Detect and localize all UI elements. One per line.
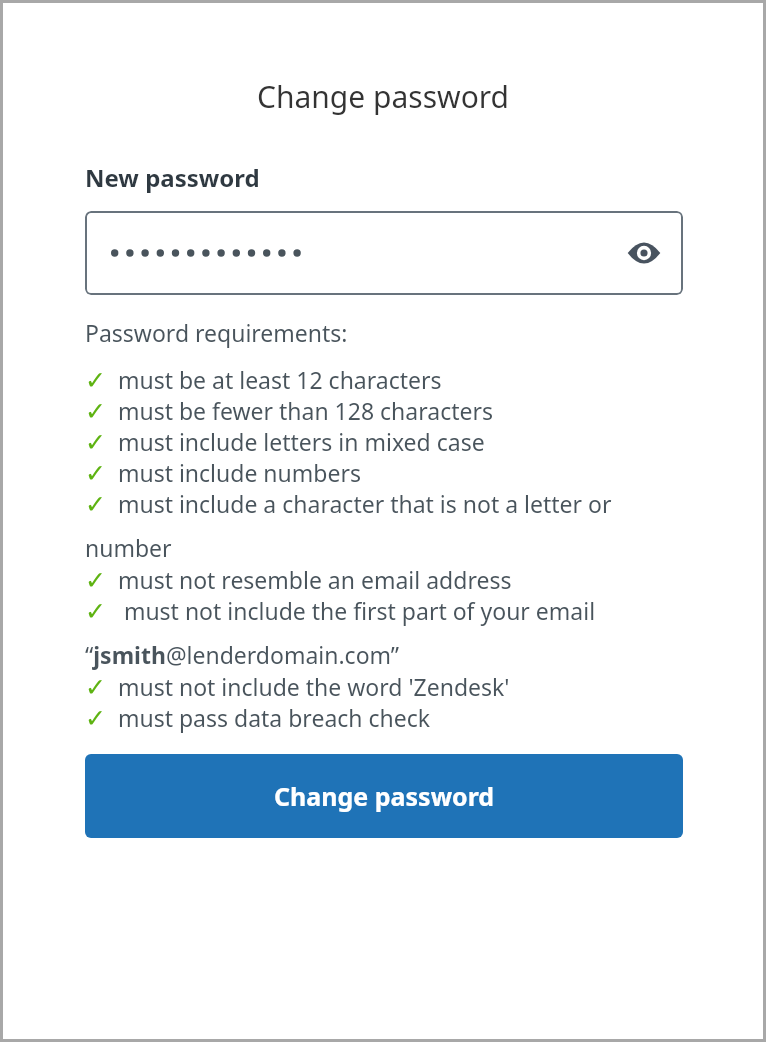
staticText: New password bbox=[85, 161, 260, 194]
button[interactable]: Change password bbox=[85, 754, 683, 838]
staticText: ✓ must be fewer than 128 characters bbox=[85, 395, 493, 426]
button[interactable]: Show password bbox=[621, 230, 667, 276]
staticText: Change password bbox=[257, 76, 510, 117]
staticText: ✓ must be at least 12 characters bbox=[85, 364, 442, 395]
staticText: ✓ must include a character that is not a… bbox=[85, 488, 694, 564]
staticText: ✓ must not include the first part of you… bbox=[85, 595, 694, 671]
staticText: ✓ must pass data breach check bbox=[85, 702, 431, 733]
staticText: Change password bbox=[274, 779, 495, 813]
staticText: ✓ must include numbers bbox=[85, 457, 361, 488]
button[interactable]: Show password bbox=[85, 211, 683, 295]
staticText: ✓ must not resemble an email address bbox=[85, 564, 512, 595]
staticText: Password requirements: bbox=[85, 317, 348, 348]
staticText: ✓ must include letters in mixed case bbox=[85, 426, 485, 457]
staticText: ✓ must not include the word 'Zendesk' bbox=[85, 671, 510, 702]
